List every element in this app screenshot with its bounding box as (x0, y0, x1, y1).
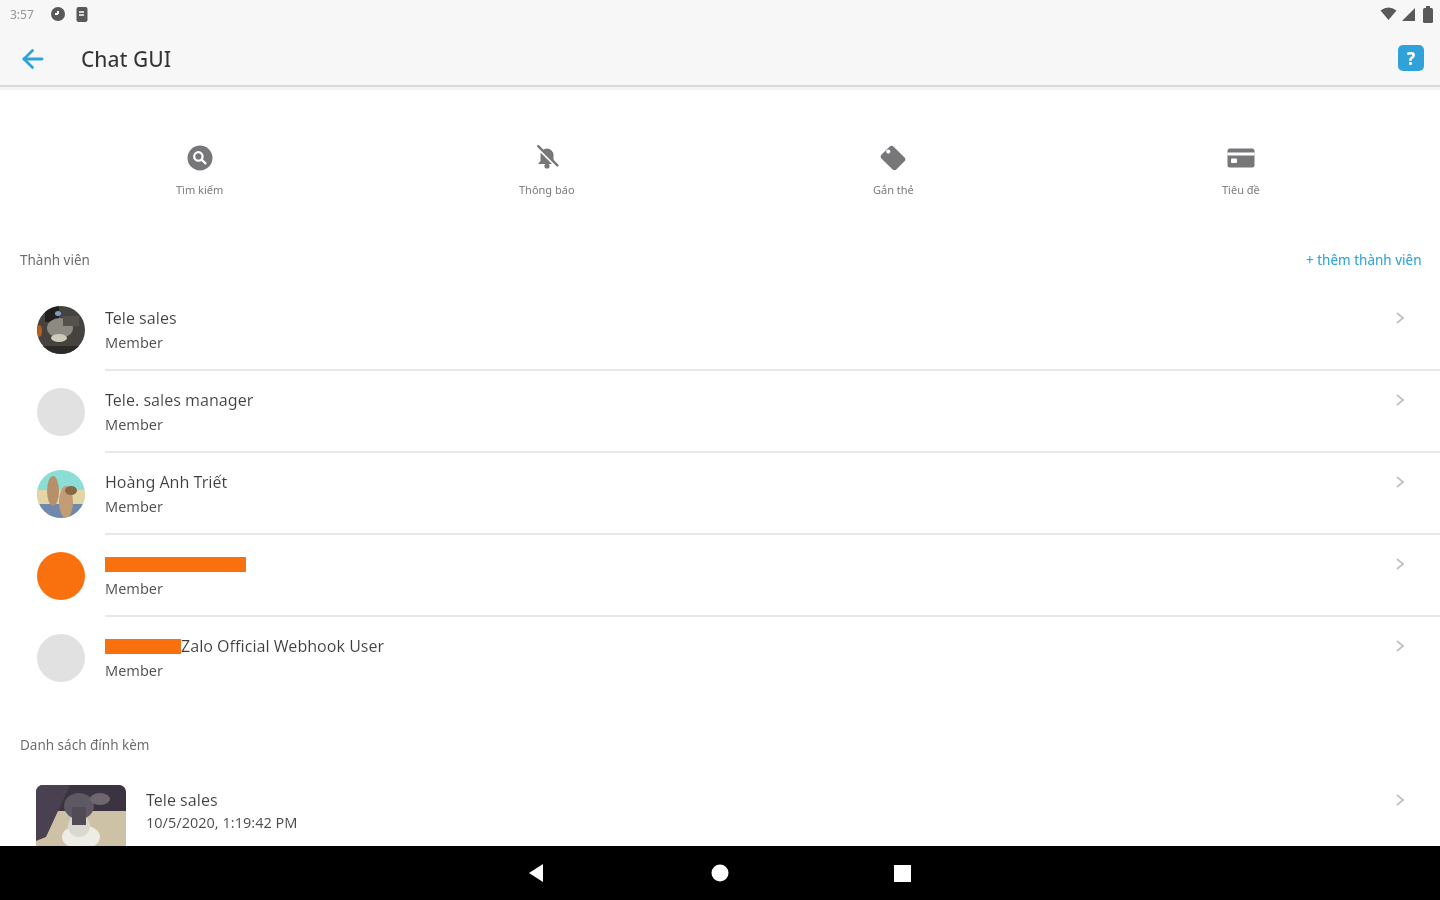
staticText: Thành viên (20, 251, 90, 269)
button[interactable]: Tele sales (0, 785, 1440, 875)
staticText: Member (105, 414, 163, 434)
button[interactable] (13, 39, 53, 79)
staticText: 3:57 (10, 6, 34, 22)
staticText: Tele sales (105, 307, 177, 329)
button[interactable]: ? (1398, 45, 1424, 71)
staticText: Tele sales (146, 789, 218, 811)
staticText: Member (105, 496, 163, 516)
button[interactable]: Tìm kiếm (120, 90, 280, 230)
button[interactable]: Member (0, 535, 1440, 617)
button[interactable]: Gắn thẻ (813, 90, 973, 230)
button[interactable]: Tele. sales manager (0, 371, 1440, 453)
button[interactable]: Tiêu đề (1161, 90, 1321, 230)
staticText: Thông báo (519, 182, 575, 197)
staticText: 10/5/2020, 1:19:42 PM (146, 812, 298, 832)
staticText: Member (105, 332, 163, 352)
button[interactable]: Hoàng Anh Triết (0, 453, 1440, 535)
staticText: Danh sách đính kèm (20, 736, 150, 752)
staticText: Hoàng Anh Triết (105, 471, 228, 493)
button[interactable] (696, 849, 744, 897)
button[interactable]: Zalo Official Webhook User (0, 617, 1440, 699)
staticText: Chat GUI (81, 45, 172, 74)
staticText: ? (1407, 47, 1416, 70)
staticText: Zalo Official Webhook User (181, 635, 385, 657)
staticText: Tiêu đề (1222, 182, 1260, 197)
button[interactable]: + thêm thành viên (1306, 251, 1422, 269)
staticText: Member (105, 660, 163, 680)
staticText: Member (105, 578, 163, 598)
button[interactable] (513, 849, 561, 897)
staticText: + thêm thành viên (1306, 251, 1422, 269)
staticText: Tele. sales manager (105, 389, 254, 411)
staticText: Gắn thẻ (873, 182, 914, 197)
staticText: Tìm kiếm (176, 182, 224, 197)
button[interactable]: Tele sales (0, 289, 1440, 371)
button[interactable] (878, 849, 926, 897)
button[interactable]: Thông báo (467, 90, 627, 230)
